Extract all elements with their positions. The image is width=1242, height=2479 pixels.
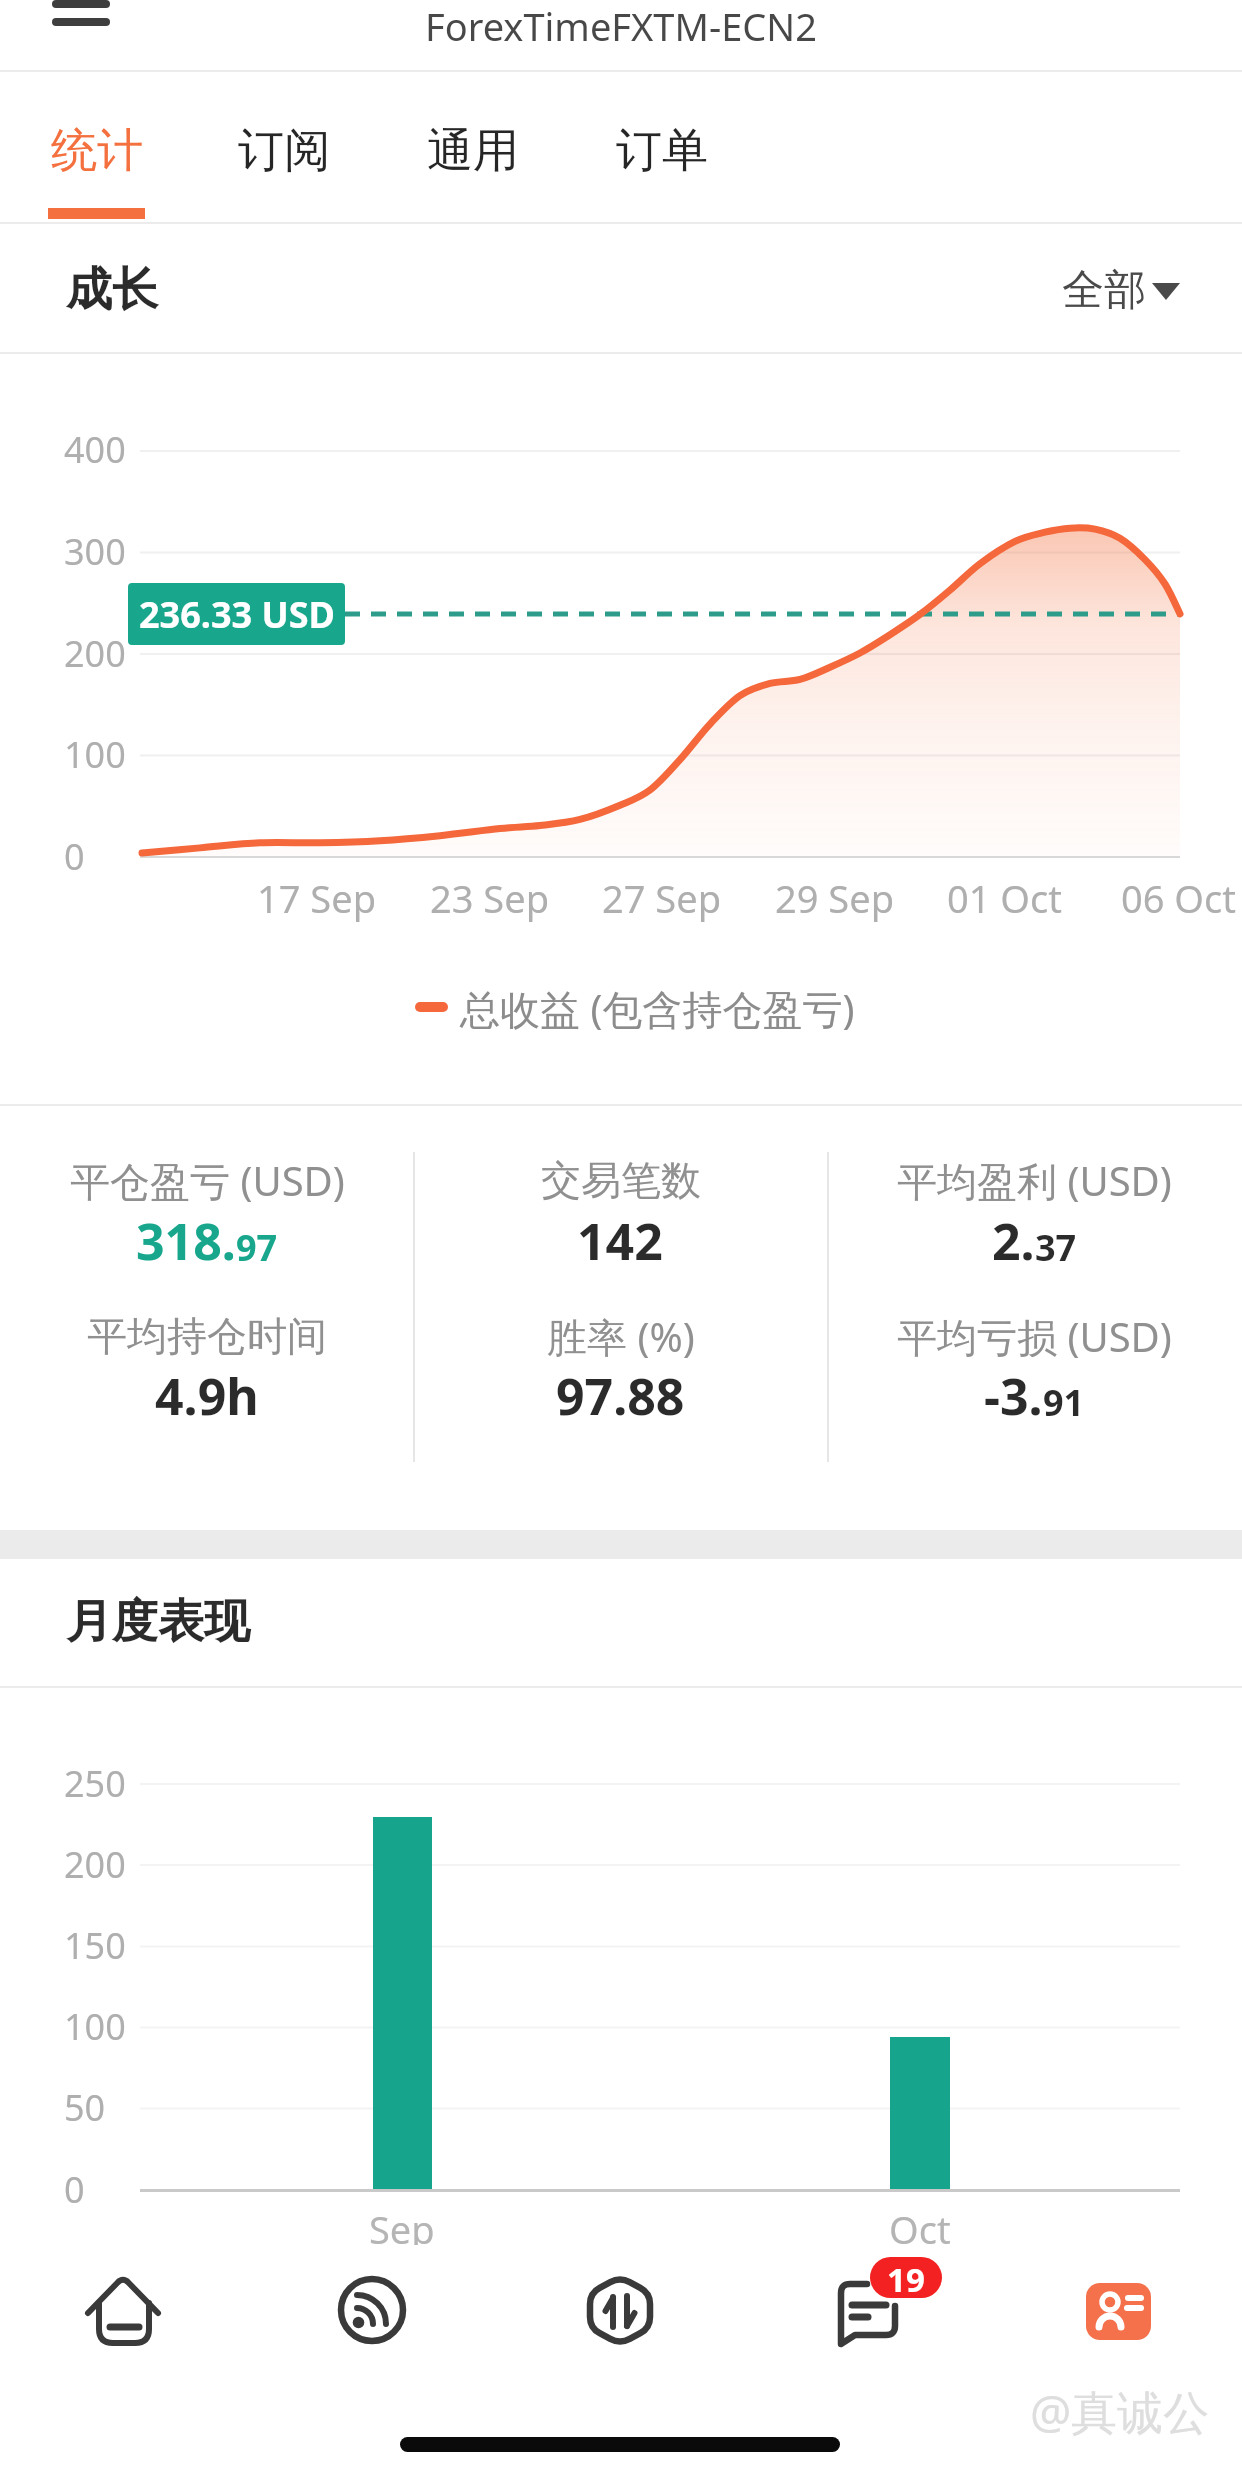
staticText: 142 <box>577 1207 663 1275</box>
staticText: @真诚公 <box>1030 2380 1210 2440</box>
staticText: Oct <box>889 2203 951 2253</box>
staticText: 250 <box>64 1759 126 1808</box>
button[interactable]: 通用 <box>404 80 541 222</box>
staticText: 50 <box>64 2083 106 2132</box>
staticText: 平均持仓时间 <box>87 1311 327 1361</box>
staticText: 全部 <box>1062 264 1146 317</box>
staticText: 统计 <box>51 122 143 180</box>
button[interactable] <box>744 2250 992 2400</box>
staticText: 胜率 (%) <box>547 1309 695 1364</box>
staticText: 150 <box>64 1921 126 1970</box>
staticText: 19 <box>887 2257 925 2298</box>
staticText: 平仓盈亏 (USD) <box>70 1153 345 1208</box>
staticText: 成长 <box>66 261 158 319</box>
staticText: 2. <box>992 1207 1035 1275</box>
staticText: 0 <box>64 2165 85 2214</box>
staticText: 200 <box>64 629 126 678</box>
staticText: 23 Sep <box>430 872 550 922</box>
staticText: ForexTimeFXTM-ECN2 <box>425 0 817 52</box>
button[interactable] <box>248 2250 496 2400</box>
staticText: 100 <box>64 2002 126 2051</box>
staticText: 总收益 (包含持仓盈亏) <box>460 981 855 1036</box>
staticText: 236.33 USD <box>139 590 335 639</box>
button[interactable] <box>992 2250 1240 2400</box>
button[interactable]: 全部 <box>1020 258 1200 322</box>
staticText: 100 <box>64 730 126 779</box>
staticText: 37 <box>1035 1223 1077 1272</box>
button[interactable] <box>496 2250 744 2400</box>
staticText: 200 <box>64 1840 126 1889</box>
staticText: 平均盈利 (USD) <box>897 1153 1172 1208</box>
staticText: 318. <box>136 1207 236 1275</box>
staticText: 月度表现 <box>66 1593 250 1651</box>
staticText: -3. <box>984 1362 1043 1430</box>
button[interactable] <box>0 2250 248 2400</box>
staticText: 0 <box>64 832 85 881</box>
staticText: 06 Oct <box>1121 872 1236 922</box>
staticText: 订阅 <box>238 122 330 180</box>
staticText: Sep <box>369 2203 435 2253</box>
button[interactable]: 订阅 <box>215 80 352 222</box>
button[interactable]: 订单 <box>593 80 730 222</box>
staticText: 27 Sep <box>602 872 722 922</box>
staticText: 4.9h <box>155 1362 259 1430</box>
staticText: 97.88 <box>556 1362 685 1430</box>
staticText: 91 <box>1043 1378 1085 1427</box>
staticText: 平均亏损 (USD) <box>897 1309 1172 1364</box>
staticText: 交易笔数 <box>541 1155 701 1205</box>
staticText: 29 Sep <box>775 872 895 922</box>
staticText: 97 <box>236 1223 278 1272</box>
staticText: 订单 <box>616 122 708 180</box>
button[interactable]: 统计 <box>28 80 165 222</box>
staticText: 01 Oct <box>947 872 1062 922</box>
staticText: 17 Sep <box>257 872 377 922</box>
staticText: 400 <box>64 425 126 474</box>
staticText: 300 <box>64 527 126 576</box>
staticText: 通用 <box>427 122 519 180</box>
